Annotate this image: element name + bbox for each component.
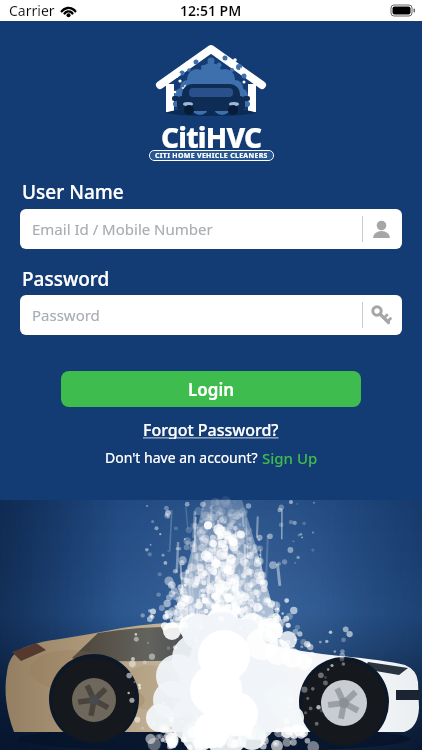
staticText: Don't have an account? [105, 448, 262, 467]
staticText: CITI HOME VEHICLE CLEANERS [155, 151, 268, 161]
staticText: Sign Up [262, 448, 318, 467]
staticText: Login [188, 378, 235, 401]
button[interactable]: Password [20, 295, 402, 335]
staticText: Forgot Password? [143, 419, 279, 439]
staticText: 12:51 PM [180, 1, 242, 20]
staticText: Email Id / Mobile Number [32, 219, 213, 239]
button[interactable]: Login [61, 371, 361, 407]
staticText: Password [22, 266, 110, 288]
staticText: User Name [22, 179, 124, 201]
button[interactable]: Email Id / Mobile Number [20, 209, 402, 249]
staticText: CitiHVC [161, 118, 262, 150]
staticText: Carrier [9, 1, 55, 20]
button[interactable]: Sign Up [262, 448, 318, 467]
button[interactable]: Forgot Password? [143, 419, 279, 439]
staticText: Password [32, 305, 100, 325]
